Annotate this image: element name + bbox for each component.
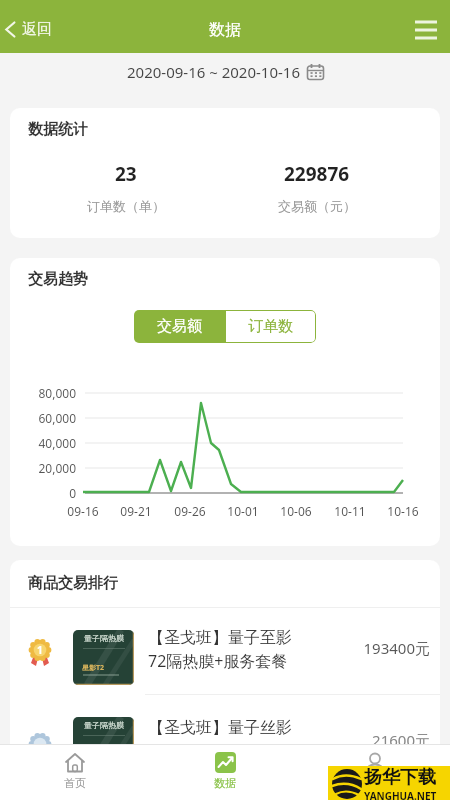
staticText: YANGHUA.NET <box>364 789 437 800</box>
staticText: 10-06 <box>272 503 320 519</box>
staticText: 量子隔热膜 <box>84 720 124 730</box>
staticText: 0 <box>22 485 76 501</box>
button[interactable]: 我的 <box>300 745 450 800</box>
button[interactable]: 数据 <box>150 745 300 800</box>
button[interactable] <box>415 20 437 40</box>
button[interactable]: 返回 <box>4 20 52 39</box>
staticText: 星影T2 <box>82 663 105 673</box>
staticText: 2020-09-16 ~ 2020-10-16 <box>127 62 300 82</box>
staticText: 72隔热膜+服务套餐 <box>148 650 288 672</box>
staticText: 订单数 <box>248 317 293 336</box>
staticText: 10-01 <box>219 503 267 519</box>
staticText: 交易额（元） <box>278 198 356 214</box>
staticText: 193400元 <box>310 638 430 658</box>
staticText: 09-16 <box>59 503 107 519</box>
staticText: 23 <box>115 161 137 187</box>
button[interactable]: 23 <box>30 161 221 214</box>
button[interactable]: 交易额 <box>134 310 225 343</box>
staticText: 交易额 <box>157 317 202 336</box>
staticText: 60,000 <box>22 410 76 426</box>
staticText: 数据 <box>214 776 236 790</box>
button[interactable]: 2020-09-16 ~ 2020-10-16 <box>0 53 450 90</box>
staticText: 星影T2 <box>82 750 105 760</box>
staticText: 1 <box>37 643 43 657</box>
staticText: 40,000 <box>22 435 76 451</box>
staticText: 我的 <box>364 776 386 790</box>
staticText: 09-21 <box>112 503 160 519</box>
button[interactable]: 订单数 <box>225 310 316 343</box>
button[interactable]: 229876 <box>221 161 412 214</box>
staticText: 订单数（单） <box>87 198 165 214</box>
staticText: 数据 <box>209 20 241 40</box>
staticText: 数据统计 <box>28 120 88 139</box>
staticText: 首页 <box>64 776 86 790</box>
staticText: 09-26 <box>166 503 214 519</box>
staticText: 10-11 <box>326 503 374 519</box>
button[interactable]: 扬华下载 <box>328 766 450 800</box>
staticText: 【圣戈班】量子至影 <box>148 628 292 648</box>
staticText: 229876 <box>284 161 350 187</box>
staticText: 量子隔热膜 <box>84 633 124 643</box>
button[interactable]: 1 <box>10 608 440 694</box>
staticText: 21600元 <box>310 730 430 750</box>
button[interactable]: 首页 <box>0 745 150 800</box>
staticText: 交易趋势 <box>28 270 88 289</box>
staticText: 10-16 <box>379 503 427 519</box>
staticText: 返回 <box>22 20 52 39</box>
staticText: 80,000 <box>22 385 76 401</box>
staticText: 扬华下载 <box>364 766 436 789</box>
staticText: 【圣戈班】量子丝影 <box>148 718 292 738</box>
staticText: 商品交易排行 <box>28 574 118 593</box>
button[interactable]: 量子隔热膜 <box>10 695 440 800</box>
staticText: 20,000 <box>22 460 76 476</box>
